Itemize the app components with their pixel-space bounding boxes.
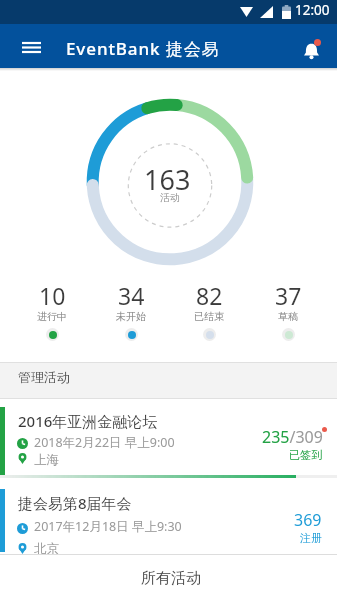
staticText: 所有活动 xyxy=(141,569,201,588)
staticText: 注册 xyxy=(300,531,322,545)
staticText: 活动 xyxy=(160,191,180,204)
staticText: 进行中 xyxy=(37,310,67,323)
staticText: 捷会易第8届年会 xyxy=(18,493,132,513)
button[interactable]: 82 xyxy=(170,278,248,346)
staticText: 369 xyxy=(294,509,322,531)
staticText: 34 xyxy=(118,280,145,311)
button[interactable]: 34 xyxy=(92,278,170,346)
button[interactable] xyxy=(295,34,329,64)
staticText: 管理活动 xyxy=(18,369,70,385)
button[interactable]: 捷会易第8届年会 xyxy=(0,481,337,554)
staticText: 82 xyxy=(196,280,223,311)
staticText: 已签到 xyxy=(289,448,322,462)
staticText: 2018年2月22日 早上9:00 xyxy=(34,434,175,451)
staticText: 2017年12月18日 早上9:30 xyxy=(34,518,182,535)
staticText: 已结束 xyxy=(194,310,224,323)
button[interactable]: 10 xyxy=(13,278,91,346)
staticText: 37 xyxy=(275,280,302,311)
button[interactable]: 37 xyxy=(249,278,327,346)
staticText: 草稿 xyxy=(278,310,298,323)
staticText: 163 xyxy=(144,161,191,198)
staticText: 未开始 xyxy=(116,310,146,323)
staticText: 235/309 xyxy=(262,426,323,448)
staticText: 10 xyxy=(39,280,66,311)
staticText: EventBank 捷会易 xyxy=(66,37,220,60)
button[interactable]: 所有活动 xyxy=(0,554,337,600)
staticText: 2016年亚洲金融论坛 xyxy=(18,411,158,431)
staticText: 12:00 xyxy=(295,1,330,19)
button[interactable]: 2016年亚洲金融论坛 xyxy=(0,399,337,481)
staticText: 北京 xyxy=(34,541,59,557)
staticText: 上海 xyxy=(34,452,59,468)
button[interactable] xyxy=(14,34,50,60)
